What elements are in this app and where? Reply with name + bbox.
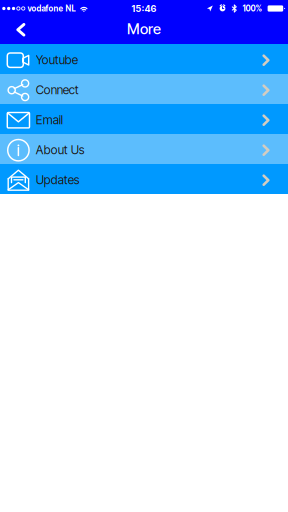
- button[interactable]: Updates: [0, 164, 288, 194]
- button[interactable]: Connect: [0, 74, 288, 104]
- staticText: More: [127, 20, 161, 38]
- staticText: vodafone NL: [27, 4, 75, 13]
- staticText: About Us: [36, 143, 85, 157]
- staticText: Updates: [36, 173, 80, 187]
- button[interactable]: About Us: [0, 134, 288, 164]
- staticText: Youtube: [36, 53, 78, 67]
- staticText: Email: [36, 113, 63, 127]
- staticText: Connect: [36, 83, 79, 97]
- button[interactable]: Email: [0, 104, 288, 134]
- button[interactable]: Back: [0, 16, 50, 45]
- button[interactable]: Youtube: [0, 44, 288, 74]
- staticText: 15:46: [131, 3, 156, 14]
- staticText: 100%: [243, 4, 263, 13]
